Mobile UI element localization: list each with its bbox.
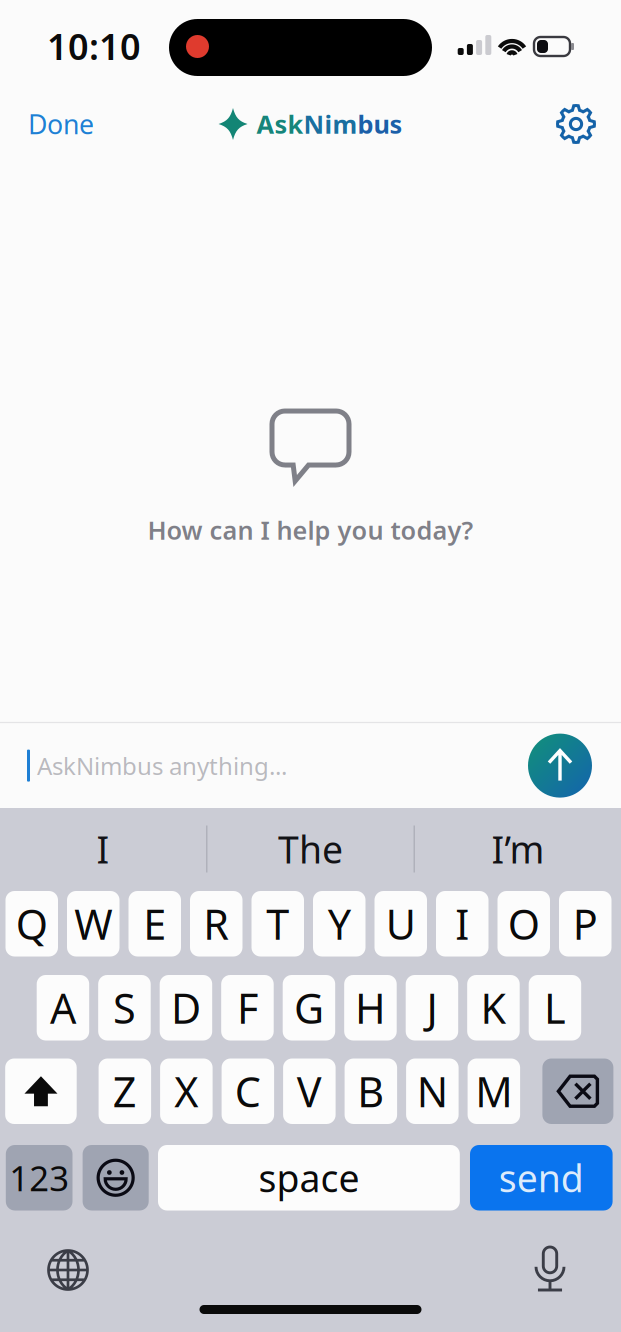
- staticText: B: [357, 1064, 384, 1119]
- staticText: V: [297, 1064, 322, 1119]
- button[interactable]: Delete: [542, 1058, 613, 1124]
- button[interactable]: Next keyboard: [35, 1237, 100, 1302]
- staticText: AskNimbus anything...: [37, 750, 287, 782]
- button[interactable]: U: [374, 891, 427, 956]
- button[interactable]: Shift: [5, 1058, 77, 1124]
- button[interactable]: M: [468, 1058, 520, 1124]
- staticText: G: [294, 980, 324, 1035]
- button[interactable]: O: [497, 891, 550, 956]
- button[interactable]: B: [345, 1058, 397, 1124]
- button[interactable]: Z: [99, 1058, 151, 1124]
- staticText: A: [50, 980, 76, 1035]
- staticText: K: [480, 980, 506, 1035]
- staticText: E: [143, 896, 166, 951]
- button[interactable]: E: [128, 891, 181, 956]
- staticText: send: [499, 1153, 584, 1203]
- staticText: J: [426, 980, 437, 1035]
- button[interactable]: N: [406, 1058, 459, 1124]
- staticText: M: [475, 1064, 512, 1119]
- button[interactable]: H: [344, 975, 397, 1040]
- staticText: How can I help you today?: [147, 513, 473, 547]
- button[interactable]: Settings: [557, 99, 621, 149]
- staticText: X: [174, 1064, 198, 1119]
- button[interactable]: 123: [6, 1145, 72, 1210]
- staticText: F: [237, 980, 258, 1035]
- staticText: space: [258, 1153, 359, 1203]
- button[interactable]: T: [251, 891, 304, 956]
- button[interactable]: L: [529, 975, 581, 1040]
- staticText: T: [266, 896, 289, 951]
- staticText: Ask: [256, 107, 303, 141]
- staticText: L: [544, 980, 566, 1035]
- button[interactable]: D: [160, 975, 212, 1040]
- button[interactable]: send: [470, 1145, 613, 1210]
- staticText: Done: [28, 106, 94, 142]
- button[interactable]: A: [37, 975, 89, 1040]
- staticText: C: [235, 1064, 261, 1119]
- button[interactable]: Emoji: [83, 1145, 149, 1210]
- staticText: U: [386, 896, 416, 951]
- button[interactable]: Send: [528, 734, 592, 798]
- button[interactable]: Y: [313, 891, 365, 956]
- staticText: 123: [9, 1155, 69, 1201]
- button[interactable]: X: [160, 1058, 213, 1124]
- button[interactable]: K: [467, 975, 520, 1040]
- staticText: N: [417, 1064, 448, 1119]
- staticText: O: [508, 896, 540, 951]
- staticText: P: [573, 896, 598, 951]
- button[interactable]: J: [406, 975, 458, 1040]
- staticText: W: [74, 896, 112, 951]
- staticText: R: [203, 896, 229, 951]
- staticText: 10:10: [47, 22, 141, 70]
- button[interactable]: R: [190, 891, 242, 956]
- button[interactable]: V: [283, 1058, 336, 1124]
- button[interactable]: Dictation: [523, 1234, 577, 1303]
- button[interactable]: G: [283, 975, 335, 1040]
- staticText: Z: [113, 1064, 137, 1119]
- staticText: bus: [357, 107, 402, 141]
- button[interactable]: Done: [0, 96, 94, 152]
- button[interactable]: I: [0, 812, 206, 886]
- staticText: The: [278, 824, 343, 874]
- staticText: H: [355, 980, 386, 1035]
- button[interactable]: space: [158, 1145, 460, 1210]
- staticText: I’m: [491, 824, 544, 874]
- button[interactable]: The: [207, 812, 413, 886]
- button[interactable]: I: [436, 891, 488, 956]
- button[interactable]: P: [559, 891, 611, 956]
- staticText: I: [96, 824, 109, 874]
- button[interactable]: F: [221, 975, 274, 1040]
- button[interactable]: W: [67, 891, 119, 956]
- staticText: S: [113, 980, 136, 1035]
- button[interactable]: I’m: [415, 812, 621, 886]
- staticText: Q: [16, 896, 48, 951]
- staticText: Nim: [303, 107, 357, 141]
- staticText: D: [171, 980, 201, 1035]
- staticText: I: [455, 896, 469, 951]
- button[interactable]: C: [222, 1058, 274, 1124]
- button[interactable]: Q: [5, 891, 58, 956]
- button[interactable]: S: [98, 975, 151, 1040]
- staticText: Y: [328, 896, 351, 951]
